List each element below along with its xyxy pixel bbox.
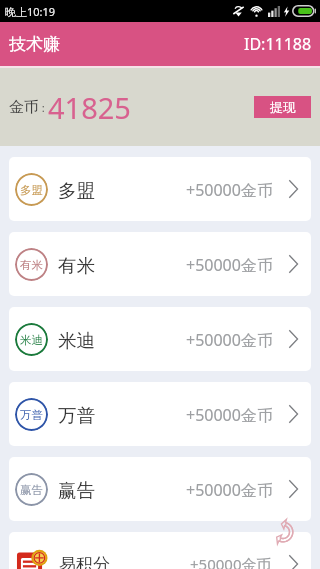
staticText: 易积分 [59,554,110,569]
button[interactable]: 提现 [254,96,311,118]
staticText: 金币 [9,98,39,117]
staticText: +50000金币 [190,554,272,569]
staticText: 多盟 [20,183,43,197]
staticText: 米迪 [20,333,43,347]
staticText: ID:11188 [244,33,312,55]
staticText: 赢告 [58,479,95,502]
staticText: +50000金币 [186,254,273,276]
staticText: 晚上10:19 [5,4,56,19]
button[interactable]: 多盟 [9,157,311,221]
staticText: +50000金币 [186,329,273,351]
button[interactable]: 万普 [9,382,311,446]
button[interactable]: Refresh [272,518,294,546]
staticText: 提现 [270,99,296,115]
button[interactable]: 米迪 [9,307,311,371]
staticText: 41825 [48,88,131,127]
staticText: 赢告 [20,483,43,497]
button[interactable]: 赢告 [9,457,311,521]
staticText: 多盟 [58,179,95,202]
button[interactable]: 有米 [9,232,311,296]
staticText: : [39,100,48,115]
staticText: +50000金币 [186,404,273,426]
staticText: 万普 [58,404,95,427]
staticText: +50000金币 [186,479,273,501]
staticText: 有米 [20,258,43,272]
staticText: +50000金币 [186,179,273,201]
staticText: 有米 [58,254,95,277]
button[interactable]: 易积分 [9,532,311,569]
staticText: 万普 [20,408,43,422]
staticText: 技术赚 [9,34,60,55]
staticText: 米迪 [58,329,95,352]
